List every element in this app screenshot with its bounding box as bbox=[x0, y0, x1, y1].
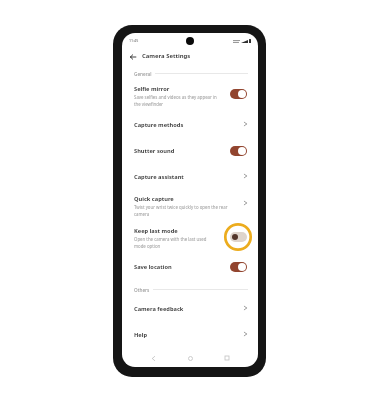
staticText: Capture methods bbox=[134, 121, 184, 129]
button[interactable]: Home bbox=[184, 352, 196, 364]
staticText: Open the camera with the last used mode … bbox=[134, 236, 219, 249]
button[interactable]: Save location bbox=[122, 254, 258, 280]
staticText: Help bbox=[134, 331, 148, 339]
staticText: Others bbox=[134, 287, 150, 293]
staticText: Shutter sound bbox=[134, 147, 175, 155]
staticText: General bbox=[134, 71, 152, 77]
button[interactable]: Capture methods bbox=[122, 112, 258, 138]
staticText: Save location bbox=[134, 263, 172, 271]
button[interactable]: Capture assistant bbox=[122, 164, 258, 190]
button[interactable]: Recents bbox=[221, 352, 233, 364]
button[interactable]: Toggle bbox=[230, 89, 247, 99]
button[interactable]: Shutter sound bbox=[122, 138, 258, 164]
button[interactable]: Camera feedback bbox=[122, 296, 258, 322]
staticText: 11:45 bbox=[129, 38, 139, 43]
button[interactable]: Keep last mode bbox=[122, 222, 258, 254]
button[interactable]: Toggle bbox=[230, 262, 247, 272]
staticText: Camera feedback bbox=[134, 305, 184, 313]
staticText: Keep last mode bbox=[134, 227, 178, 235]
button[interactable]: Quick capture bbox=[122, 190, 258, 222]
button[interactable]: Toggle bbox=[230, 232, 247, 242]
button[interactable]: Selfie mirror bbox=[122, 80, 258, 112]
button[interactable]: Help bbox=[122, 322, 258, 348]
button[interactable]: Back bbox=[126, 50, 139, 63]
staticText: Twist your wrist twice quickly to open t… bbox=[134, 204, 231, 217]
staticText: Selfie mirror bbox=[134, 85, 170, 93]
button[interactable]: Back bbox=[147, 352, 159, 364]
staticText: Save selfies and videos as they appear i… bbox=[134, 94, 219, 107]
button[interactable]: Toggle bbox=[230, 146, 247, 156]
staticText: Camera Settings bbox=[142, 52, 191, 60]
staticText: Quick capture bbox=[134, 195, 174, 203]
staticText: Capture assistant bbox=[134, 173, 184, 181]
